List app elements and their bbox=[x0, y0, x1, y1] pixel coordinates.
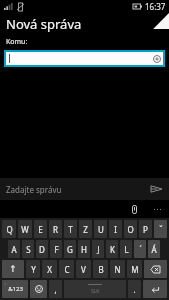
button[interactable]: . bbox=[128, 280, 141, 298]
staticText: W bbox=[21, 224, 29, 235]
staticText: , bbox=[54, 284, 57, 295]
button[interactable]: X bbox=[42, 260, 57, 278]
button[interactable]: L bbox=[120, 240, 132, 258]
staticText: . bbox=[133, 284, 136, 295]
button[interactable]: N bbox=[110, 260, 125, 278]
staticText: O bbox=[127, 224, 134, 235]
button[interactable]: Z bbox=[79, 220, 92, 238]
button[interactable]: More options bbox=[150, 202, 164, 216]
staticText: ´ bbox=[139, 244, 142, 255]
staticText: V bbox=[81, 264, 86, 275]
staticText: Komu: bbox=[6, 37, 28, 47]
button[interactable]: P bbox=[139, 220, 152, 238]
button[interactable]: ↑ bbox=[2, 260, 24, 278]
button[interactable]: A bbox=[8, 240, 20, 258]
button[interactable]: Emoji bbox=[30, 280, 47, 298]
button[interactable]: E bbox=[34, 220, 47, 238]
button[interactable]: Attach bbox=[127, 202, 141, 216]
button[interactable]: Y bbox=[26, 260, 40, 278]
button[interactable]: W bbox=[18, 220, 32, 238]
button[interactable]: F bbox=[50, 240, 62, 258]
button[interactable]: H bbox=[78, 240, 90, 258]
staticText: A bbox=[11, 244, 17, 255]
button[interactable]: ´ bbox=[134, 240, 146, 258]
staticText: M bbox=[131, 264, 139, 275]
button[interactable]: V bbox=[76, 260, 91, 278]
button[interactable]: Á bbox=[148, 240, 160, 258]
staticText: &123 bbox=[8, 285, 23, 293]
staticText: ü bbox=[4, 281, 7, 286]
staticText: Zadajte správu bbox=[6, 184, 62, 195]
button[interactable]: Zadajte správu bbox=[0, 178, 169, 200]
button[interactable]: U bbox=[94, 220, 107, 238]
staticText: Á bbox=[151, 244, 157, 255]
button[interactable]: Q bbox=[2, 220, 16, 238]
button[interactable]: G bbox=[64, 240, 76, 258]
staticText: S bbox=[26, 244, 31, 255]
staticText: G bbox=[67, 244, 73, 255]
button[interactable]: S bbox=[22, 240, 34, 258]
button[interactable]: Enter bbox=[143, 280, 167, 298]
staticText: C bbox=[64, 264, 70, 275]
button[interactable]: J bbox=[92, 240, 104, 258]
other: Add contact bbox=[153, 55, 161, 63]
staticText: J bbox=[97, 244, 100, 255]
other: Send bbox=[151, 185, 162, 193]
staticText: H bbox=[81, 244, 87, 255]
button[interactable]: Backspace bbox=[144, 260, 167, 278]
button[interactable]: O bbox=[124, 220, 137, 238]
button[interactable]: D bbox=[36, 240, 48, 258]
staticText: B bbox=[98, 264, 104, 275]
button[interactable]: ˇ bbox=[154, 220, 167, 238]
button[interactable]: K bbox=[106, 240, 118, 258]
button[interactable]: C bbox=[59, 260, 74, 278]
staticText: Z bbox=[83, 224, 88, 235]
button[interactable]: , bbox=[49, 280, 62, 298]
staticText: 16:37 bbox=[145, 1, 166, 12]
staticText: D bbox=[39, 244, 45, 255]
button[interactable]: T bbox=[64, 220, 77, 238]
staticText: N bbox=[114, 264, 121, 275]
staticText: Q bbox=[6, 224, 13, 235]
staticText: Y bbox=[31, 264, 36, 275]
staticText: R bbox=[53, 224, 58, 235]
button[interactable]: M bbox=[127, 260, 142, 278]
staticText: L bbox=[124, 244, 129, 255]
staticText: ↑ bbox=[9, 264, 17, 274]
staticText: U bbox=[98, 224, 104, 235]
button[interactable]: I bbox=[109, 220, 122, 238]
button[interactable]: Space bbox=[64, 280, 126, 298]
staticText: I bbox=[114, 224, 117, 235]
staticText: T bbox=[68, 224, 73, 235]
button[interactable]: Add contact bbox=[4, 50, 165, 67]
staticText: K bbox=[110, 244, 115, 255]
staticText: X bbox=[47, 264, 52, 275]
staticText: ˇ bbox=[159, 224, 163, 235]
staticText: F bbox=[54, 244, 59, 255]
staticText: Nová správa bbox=[6, 15, 82, 33]
staticText: P bbox=[143, 224, 148, 235]
staticText: E bbox=[38, 224, 43, 235]
button[interactable]: &123 bbox=[2, 280, 28, 298]
button[interactable]: R bbox=[49, 220, 62, 238]
button[interactable]: B bbox=[93, 260, 108, 278]
staticText: SLK bbox=[91, 288, 100, 295]
